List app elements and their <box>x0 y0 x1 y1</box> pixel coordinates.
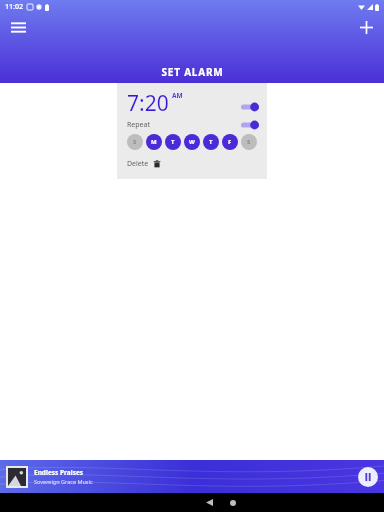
staticText: 7:20 <box>127 89 169 118</box>
button[interactable]: T <box>203 134 219 150</box>
staticText: Delete <box>127 159 149 169</box>
button[interactable]: F <box>222 134 238 150</box>
button[interactable]: T <box>165 134 181 150</box>
staticText: AM <box>172 91 183 100</box>
staticText: M <box>151 138 157 146</box>
button[interactable]: Endless Praises <box>0 460 384 493</box>
button[interactable]: W <box>184 134 200 150</box>
staticText: Sovereign Grace Music <box>34 478 93 485</box>
button[interactable]: Home <box>41 493 384 512</box>
staticText: SET ALARM <box>161 65 224 79</box>
button[interactable]: Back <box>17 493 384 512</box>
staticText: T <box>209 138 213 146</box>
staticText: W <box>189 138 195 146</box>
staticText: 11:02 <box>5 2 23 12</box>
staticText: Endless Praises <box>34 468 84 477</box>
staticText: F <box>228 138 232 146</box>
button[interactable]: 7:20 <box>117 83 267 179</box>
button[interactable]: S <box>241 134 257 150</box>
button[interactable]: Add alarm <box>353 14 379 40</box>
staticText: S <box>133 138 137 146</box>
button[interactable]: Pause <box>358 467 378 487</box>
button[interactable]: M <box>146 134 162 150</box>
button[interactable]: S <box>127 134 143 150</box>
button[interactable]: Toggle <box>241 102 259 112</box>
staticText: T <box>171 138 175 146</box>
staticText: Repeat <box>127 120 151 130</box>
button[interactable]: Toggle <box>241 120 259 130</box>
button[interactable]: Open navigation menu <box>5 14 31 40</box>
staticText: S <box>247 138 251 146</box>
button[interactable]: Delete <box>127 159 161 169</box>
